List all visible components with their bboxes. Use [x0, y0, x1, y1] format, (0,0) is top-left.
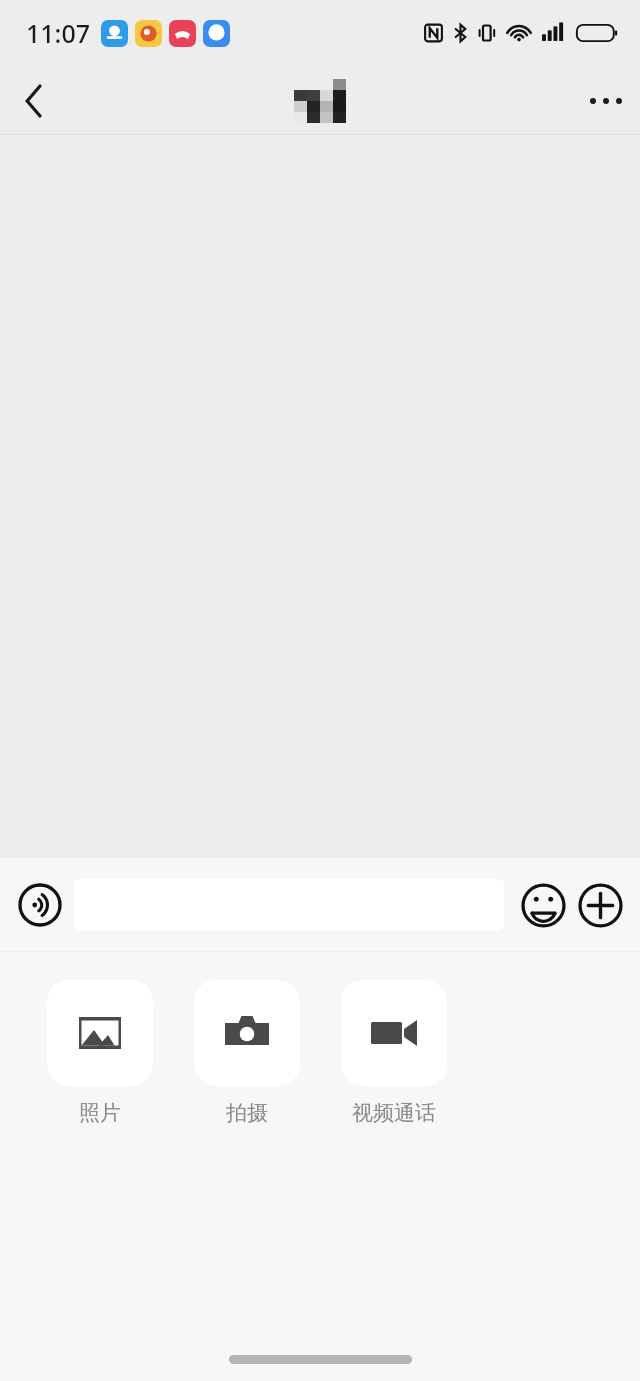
staticText: 照片 — [79, 1100, 121, 1126]
other: Photos — [47, 980, 153, 1086]
button[interactable]: Emoji — [517, 879, 569, 931]
button[interactable]: More options — [572, 67, 640, 135]
staticText: 视频通话 — [352, 1100, 436, 1126]
other: Camera — [194, 980, 300, 1086]
button[interactable]: Photos — [47, 980, 153, 1126]
button[interactable]: Voice message — [14, 879, 66, 931]
button[interactable]: Camera — [194, 980, 300, 1126]
other: Video call — [341, 980, 447, 1086]
button[interactable]: Back — [0, 67, 68, 135]
staticText: 11:07 — [26, 16, 91, 50]
staticText: 拍摄 — [226, 1100, 268, 1126]
button[interactable]: Video call — [341, 980, 447, 1126]
button[interactable]: More functions — [574, 879, 626, 931]
